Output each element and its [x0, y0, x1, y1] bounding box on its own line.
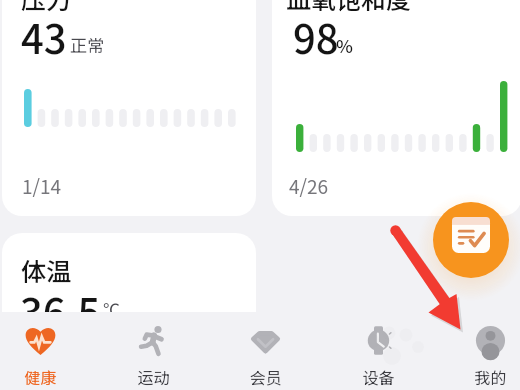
button[interactable]: 我的 — [445, 312, 520, 390]
staticText: 体温 — [21, 252, 72, 288]
button[interactable] — [2, 233, 256, 353]
staticText: ℃ — [103, 296, 120, 321]
button[interactable] — [272, 0, 520, 216]
staticText: 压力 — [21, 0, 72, 16]
staticText: 我的 — [474, 365, 507, 388]
button[interactable]: 会员 — [220, 312, 310, 390]
staticText: % — [336, 32, 353, 58]
button[interactable] — [2, 0, 256, 216]
staticText: 98 — [293, 8, 339, 66]
staticText: 4/26 — [289, 172, 329, 200]
button[interactable]: 运动 — [108, 312, 198, 390]
staticText: 正常 — [70, 32, 104, 57]
button[interactable]: Add health record — [433, 202, 509, 278]
staticText: 运动 — [137, 365, 170, 388]
staticText: 会员 — [249, 365, 282, 388]
staticText: 血氧饱和度 — [286, 0, 412, 16]
button[interactable]: 健康 — [0, 312, 85, 390]
staticText: 设备 — [362, 365, 395, 388]
staticText: 43 — [21, 8, 67, 66]
staticText: 健康 — [24, 365, 57, 388]
button[interactable]: 设备 — [333, 312, 423, 390]
staticText: 1/14 — [22, 172, 62, 200]
staticText: 36.5 — [20, 282, 101, 340]
